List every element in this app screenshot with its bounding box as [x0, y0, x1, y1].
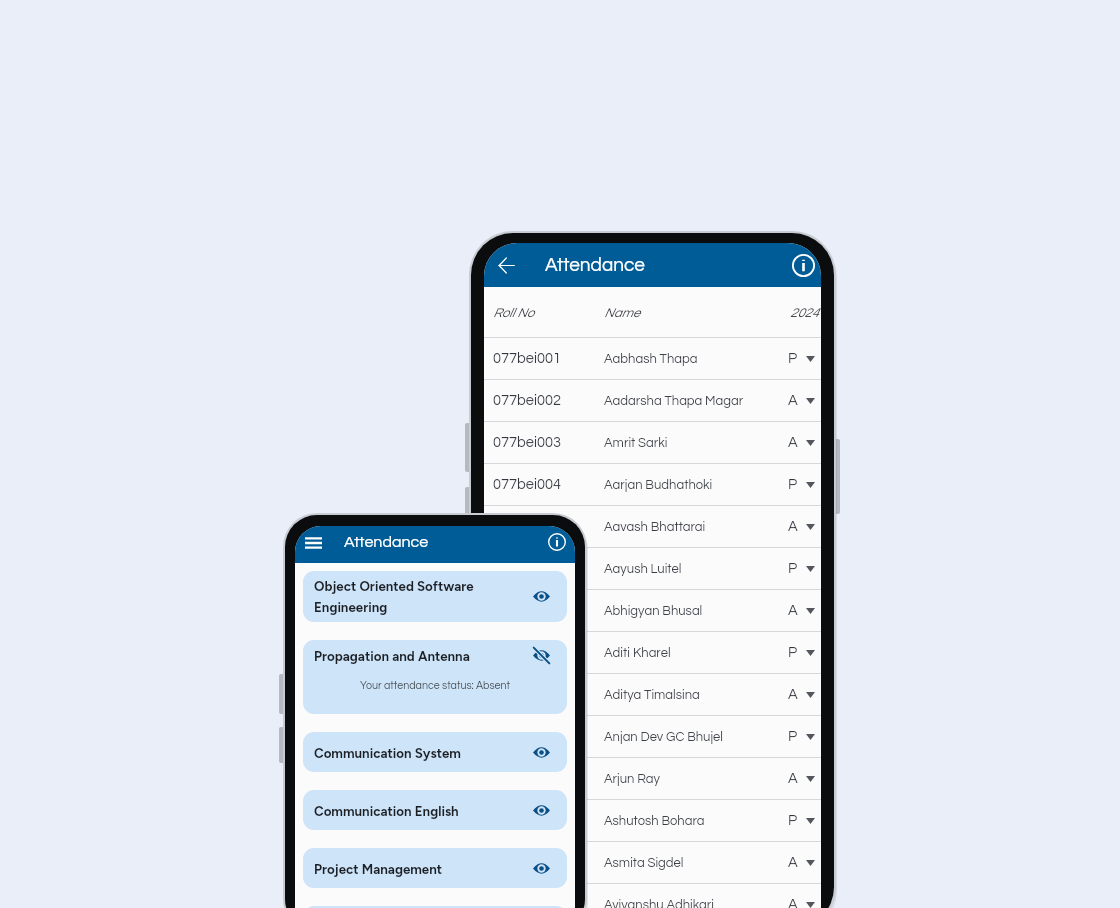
button[interactable]: 077bei001: [484, 338, 821, 379]
staticText: Name: [604, 306, 790, 319]
button[interactable]: Communication System: [303, 732, 567, 772]
button[interactable]: Info: [790, 252, 816, 278]
staticText: P: [788, 645, 798, 660]
staticText: Arjun Ray: [604, 772, 788, 785]
staticText: 077bei004: [493, 477, 604, 492]
staticText: A: [788, 771, 798, 786]
staticText: Aditi Kharel: [604, 646, 788, 659]
staticText: P: [788, 813, 798, 828]
button[interactable]: 077bei002: [484, 380, 821, 421]
staticText: 077bei012: [493, 813, 604, 828]
staticText: P: [788, 351, 798, 366]
button[interactable]: 077bei011: [484, 758, 821, 799]
button[interactable]: Communication English: [303, 790, 567, 830]
staticText: Asmita Sigdel: [604, 856, 788, 869]
staticText: Aviyanshu Adhikari: [604, 898, 788, 908]
staticText: 077bei005: [493, 519, 604, 534]
staticText: 077bei009: [493, 687, 604, 702]
staticText: P: [788, 729, 798, 744]
staticText: A: [788, 603, 798, 618]
button[interactable]: 077bei013: [484, 842, 821, 883]
staticText: Attendance: [344, 534, 429, 550]
button[interactable]: 077bei008: [484, 632, 821, 673]
staticText: 077bei006: [493, 561, 604, 576]
button[interactable]: 077bei012: [484, 800, 821, 841]
staticText: 077bei001: [493, 351, 604, 366]
staticText: 077bei003: [493, 435, 604, 450]
button[interactable]: Engineering Economics: [303, 906, 567, 908]
staticText: Ashutosh Bohara: [604, 814, 788, 827]
staticText: Amrit Sarki: [604, 436, 788, 449]
button[interactable]: 077bei006: [484, 548, 821, 589]
staticText: Communication English: [314, 803, 525, 819]
staticText: Anjan Dev GC Bhujel: [604, 730, 788, 743]
staticText: Aayush Luitel: [604, 562, 788, 575]
staticText: 077bei002: [493, 393, 604, 408]
staticText: 077bei013: [493, 855, 604, 870]
button[interactable]: Menu: [303, 532, 323, 552]
button[interactable]: 077bei003: [484, 422, 821, 463]
staticText: Abhigyan Bhusal: [604, 604, 788, 617]
staticText: Aavash Bhattarai: [604, 520, 788, 533]
staticText: Roll No: [493, 306, 604, 319]
button[interactable]: Propagation and Antenna: [303, 640, 567, 714]
staticText: A: [788, 519, 798, 534]
button[interactable]: Object Oriented Software Engineering: [303, 571, 567, 622]
staticText: Aarjan Budhathoki: [604, 478, 788, 491]
staticText: P: [788, 477, 798, 492]
staticText: P: [788, 561, 798, 576]
button[interactable]: Back: [493, 252, 519, 278]
staticText: 077bei008: [493, 645, 604, 660]
staticText: Aabhash Thapa: [604, 352, 788, 365]
staticText: Propagation and Antenna: [314, 648, 525, 664]
staticText: Attendance: [545, 255, 645, 275]
staticText: A: [788, 855, 798, 870]
staticText: A: [788, 687, 798, 702]
staticText: Communication System: [314, 745, 525, 761]
button[interactable]: 077bei005: [484, 506, 821, 547]
staticText: 077bei007: [493, 603, 604, 618]
staticText: Aadarsha Thapa Magar: [604, 394, 788, 407]
staticText: 077bei011: [493, 771, 604, 786]
button[interactable]: Project Management: [303, 848, 567, 888]
staticText: A: [788, 897, 798, 908]
staticText: Project Management: [314, 861, 525, 877]
staticText: Object Oriented Software Engineering: [314, 578, 525, 615]
button[interactable]: 077bei009: [484, 674, 821, 715]
staticText: A: [788, 435, 798, 450]
button[interactable]: 077bei014: [484, 884, 821, 908]
button[interactable]: 077bei007: [484, 590, 821, 631]
staticText: A: [788, 393, 798, 408]
button[interactable]: 077bei004: [484, 464, 821, 505]
staticText: Your attendance status: Absent: [314, 680, 556, 691]
button[interactable]: Info: [547, 532, 567, 552]
staticText: Aditya Timalsina: [604, 688, 788, 701]
staticText: 2024-0: [790, 306, 821, 319]
staticText: 077bei014: [493, 897, 604, 908]
staticText: 077bei010: [493, 729, 604, 744]
button[interactable]: 077bei010: [484, 716, 821, 757]
